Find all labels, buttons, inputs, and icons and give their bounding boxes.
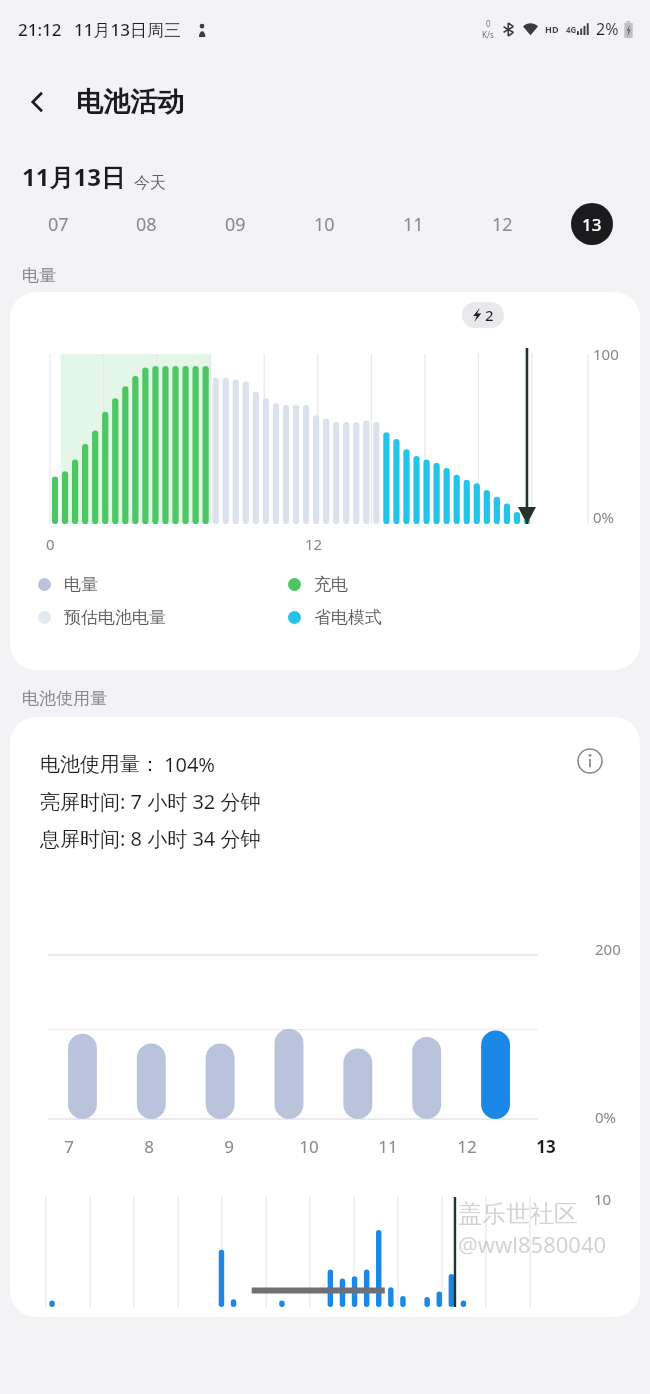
button[interactable]: 13	[547, 193, 636, 255]
staticText: 省电模式	[314, 607, 382, 628]
button[interactable]: 09	[191, 193, 280, 255]
button[interactable]: 返回	[14, 78, 62, 126]
staticText: 亮屏时间: 7 小时 32 分钟	[40, 788, 261, 815]
button[interactable]: 电量	[38, 574, 288, 595]
button[interactable]: 预估电池电量	[38, 607, 288, 628]
staticText: 9	[224, 1135, 234, 1158]
staticText: 10	[299, 1135, 319, 1158]
staticText: 200	[595, 939, 621, 959]
staticText: 11月13日	[22, 160, 125, 193]
staticText: 盖乐世社区	[458, 1199, 578, 1229]
button[interactable]: 08	[102, 193, 191, 255]
staticText: 21:12	[18, 18, 62, 41]
staticText: 2%	[596, 18, 619, 40]
staticText: 100	[593, 344, 619, 364]
staticText: 12	[492, 212, 513, 237]
staticText: 充电	[314, 574, 348, 595]
staticText: 电量	[64, 574, 98, 595]
staticText: 0	[486, 18, 491, 29]
staticText: K/s	[482, 29, 494, 40]
staticText: 0	[46, 534, 55, 554]
staticText: 104%	[164, 751, 215, 778]
button[interactable]: 11	[369, 193, 458, 255]
staticText: 11月13日周三	[74, 18, 181, 41]
staticText: 电池活动	[76, 85, 184, 119]
staticText: 4G	[566, 24, 577, 35]
staticText: 预估电池电量	[64, 607, 166, 628]
staticText: 13	[536, 1135, 556, 1158]
staticText: 电池使用量	[22, 688, 107, 709]
staticText: 13	[582, 213, 602, 236]
staticText: 息屏时间: 8 小时 34 分钟	[40, 825, 261, 852]
staticText: 电量	[22, 265, 56, 286]
staticText: 11	[403, 212, 424, 237]
button[interactable]: 省电模式	[288, 607, 488, 628]
staticText: @wwl8580040	[458, 1229, 607, 1259]
staticText: 12	[305, 534, 323, 554]
staticText: 08	[136, 212, 157, 237]
staticText: 10	[594, 1189, 612, 1209]
staticText: HD	[545, 23, 559, 35]
staticText: 10	[314, 212, 335, 237]
button[interactable]: 信息	[568, 739, 612, 783]
button[interactable]: 充电	[288, 574, 488, 595]
staticText: 2	[485, 305, 494, 325]
staticText: 11	[378, 1135, 398, 1158]
button[interactable]: 10	[280, 193, 369, 255]
staticText: 0%	[595, 1107, 617, 1127]
staticText: 07	[48, 212, 69, 237]
staticText: 7	[64, 1135, 74, 1158]
staticText: 今天	[134, 173, 166, 193]
staticText: 8	[144, 1135, 154, 1158]
staticText: 电池使用量：	[40, 752, 160, 777]
button[interactable]: 12	[458, 193, 547, 255]
staticText: 0%	[593, 507, 615, 527]
button[interactable]: 07	[14, 193, 102, 255]
staticText: 12	[457, 1135, 477, 1158]
staticText: 09	[225, 212, 246, 237]
